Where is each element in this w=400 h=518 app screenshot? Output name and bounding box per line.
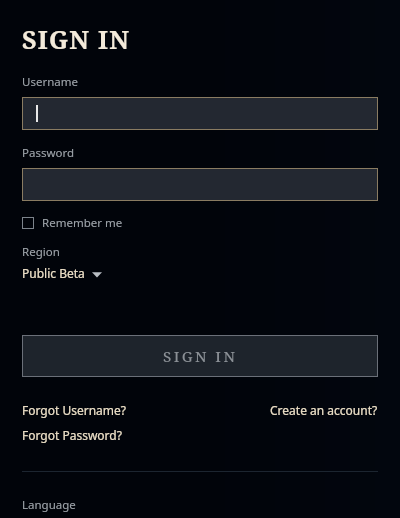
button[interactable]: Password input	[22, 168, 378, 201]
staticText: Language	[22, 497, 76, 513]
staticText: Remember me	[42, 215, 123, 231]
staticText: Region	[22, 244, 60, 260]
button[interactable]: Create an account?	[270, 401, 378, 419]
staticText: SIGN IN	[22, 22, 131, 56]
staticText: Public Beta	[22, 265, 85, 281]
button[interactable]: Username input	[22, 97, 378, 130]
staticText: SIGN IN	[163, 346, 238, 366]
button[interactable]: Forgot Username?	[22, 401, 127, 419]
staticText: Password	[22, 145, 75, 161]
button[interactable]: SIGN IN	[22, 335, 378, 377]
staticText: Username	[22, 74, 78, 90]
button[interactable]: Forgot Password?	[22, 426, 122, 444]
button[interactable]: Remember me	[22, 214, 123, 232]
button[interactable]: Public Beta	[22, 265, 102, 281]
